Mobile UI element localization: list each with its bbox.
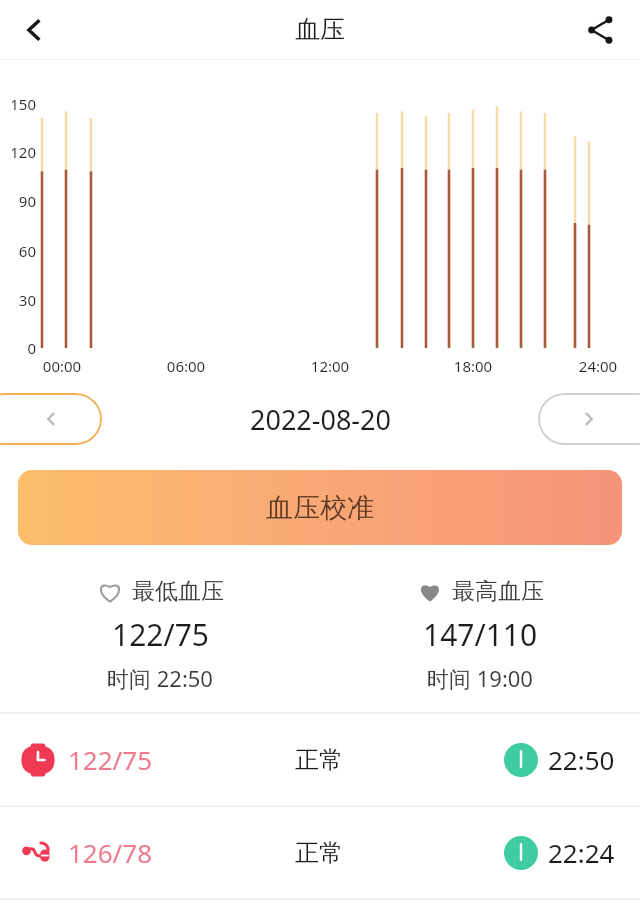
staticText: 126/78 [68,835,153,870]
staticText: 150 [0,94,36,114]
staticText: 时间 19:00 [427,663,533,693]
staticText: 60 [0,241,36,261]
staticText: 122/75 [68,742,153,777]
staticText: 120 [0,142,36,162]
button[interactable]: 最高血压 [320,557,640,712]
button[interactable]: 血压校准 [18,470,622,545]
button[interactable]: Next day [538,393,640,445]
staticText: 正常 [295,838,343,868]
staticText: 24:00 [563,356,633,376]
staticText: 最低血压 [132,577,224,606]
staticText: 06:00 [151,356,221,376]
staticText: 18:00 [438,356,508,376]
button[interactable]: Previous day [0,393,102,445]
staticText: 147/110 [423,614,538,655]
staticText: 22:50 [548,742,615,777]
staticText: 12:00 [295,356,365,376]
staticText: 正常 [295,745,343,775]
button[interactable]: Share [572,2,628,58]
staticText: 0 [0,338,36,358]
staticText: 最高血压 [452,577,544,606]
button[interactable]: 最低血压 [0,557,320,712]
staticText: 血压校准 [266,491,374,525]
staticText: 00:00 [27,356,97,376]
staticText: 血压 [295,14,345,45]
staticText: 30 [0,290,36,310]
button[interactable]: Back [6,2,62,58]
staticText: 2022-08-20 [250,401,391,438]
staticText: 90 [0,191,36,211]
button[interactable]: 126/78 [0,807,640,898]
staticText: 122/75 [112,614,209,655]
staticText: 时间 22:50 [107,663,213,693]
button[interactable]: 122/75 [0,714,640,805]
staticText: 22:24 [548,835,615,870]
